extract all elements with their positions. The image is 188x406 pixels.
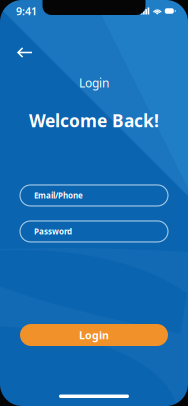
staticText: Login (79, 328, 109, 342)
button[interactable]: Email/Phone (20, 185, 168, 206)
staticText: Email/Phone (34, 190, 83, 201)
button[interactable]: Back (10, 39, 40, 66)
button[interactable]: Login (20, 324, 168, 346)
staticText: 9:41 (16, 4, 37, 18)
button[interactable]: Password (20, 221, 168, 242)
staticText: Password (34, 226, 72, 237)
staticText: Welcome Back! (29, 109, 159, 132)
staticText: Login (79, 75, 109, 91)
